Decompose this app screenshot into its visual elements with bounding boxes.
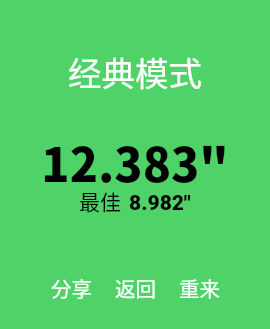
button[interactable]: 分享 [45,269,98,307]
button[interactable]: 返回 [109,269,162,307]
staticText: 8.982" [129,191,191,216]
staticText: 经典模式 [0,47,270,96]
staticText: 12.383" [0,128,270,195]
button[interactable]: 重来 [173,269,226,307]
staticText: 最佳 [79,186,121,216]
staticText: 返回 [115,273,156,303]
staticText: 分享 [51,273,92,303]
staticText: 重来 [179,273,220,303]
